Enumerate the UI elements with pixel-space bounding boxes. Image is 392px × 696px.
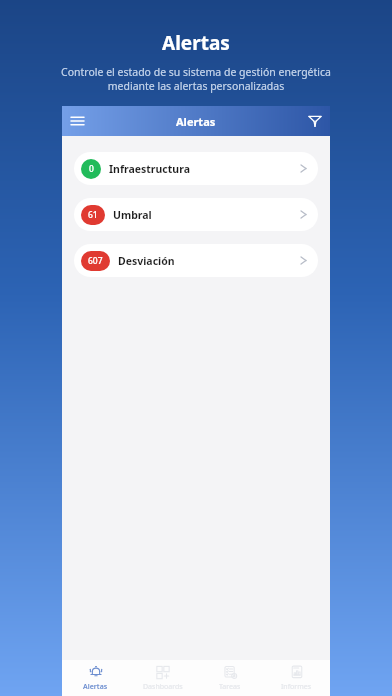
staticText: Infraestructura xyxy=(109,162,190,176)
staticText: Alertas xyxy=(176,114,216,129)
staticText: 0 xyxy=(89,163,94,175)
button[interactable]: 61 xyxy=(74,198,318,231)
staticText: Umbral xyxy=(113,208,152,222)
button[interactable]: Informes xyxy=(263,660,330,696)
staticText: 607 xyxy=(88,255,103,267)
staticText: 61 xyxy=(88,209,98,221)
staticText: Informes xyxy=(281,682,312,692)
button[interactable]: 0 xyxy=(74,152,318,185)
staticText: Dashboards xyxy=(143,682,183,692)
button[interactable]: Dashboards xyxy=(129,660,196,696)
staticText: Alertas xyxy=(83,682,108,692)
button[interactable]: Tareas xyxy=(196,660,263,696)
button[interactable]: Alertas xyxy=(62,660,129,696)
staticText: Tareas xyxy=(219,682,241,692)
button[interactable]: Filtrar xyxy=(300,106,330,136)
staticText: Desviación xyxy=(118,254,175,268)
staticText: Controle el estado de su sistema de gest… xyxy=(61,65,331,93)
staticText: Alertas xyxy=(162,30,230,56)
button[interactable]: 607 xyxy=(74,244,318,277)
button[interactable]: Menú xyxy=(62,106,92,136)
